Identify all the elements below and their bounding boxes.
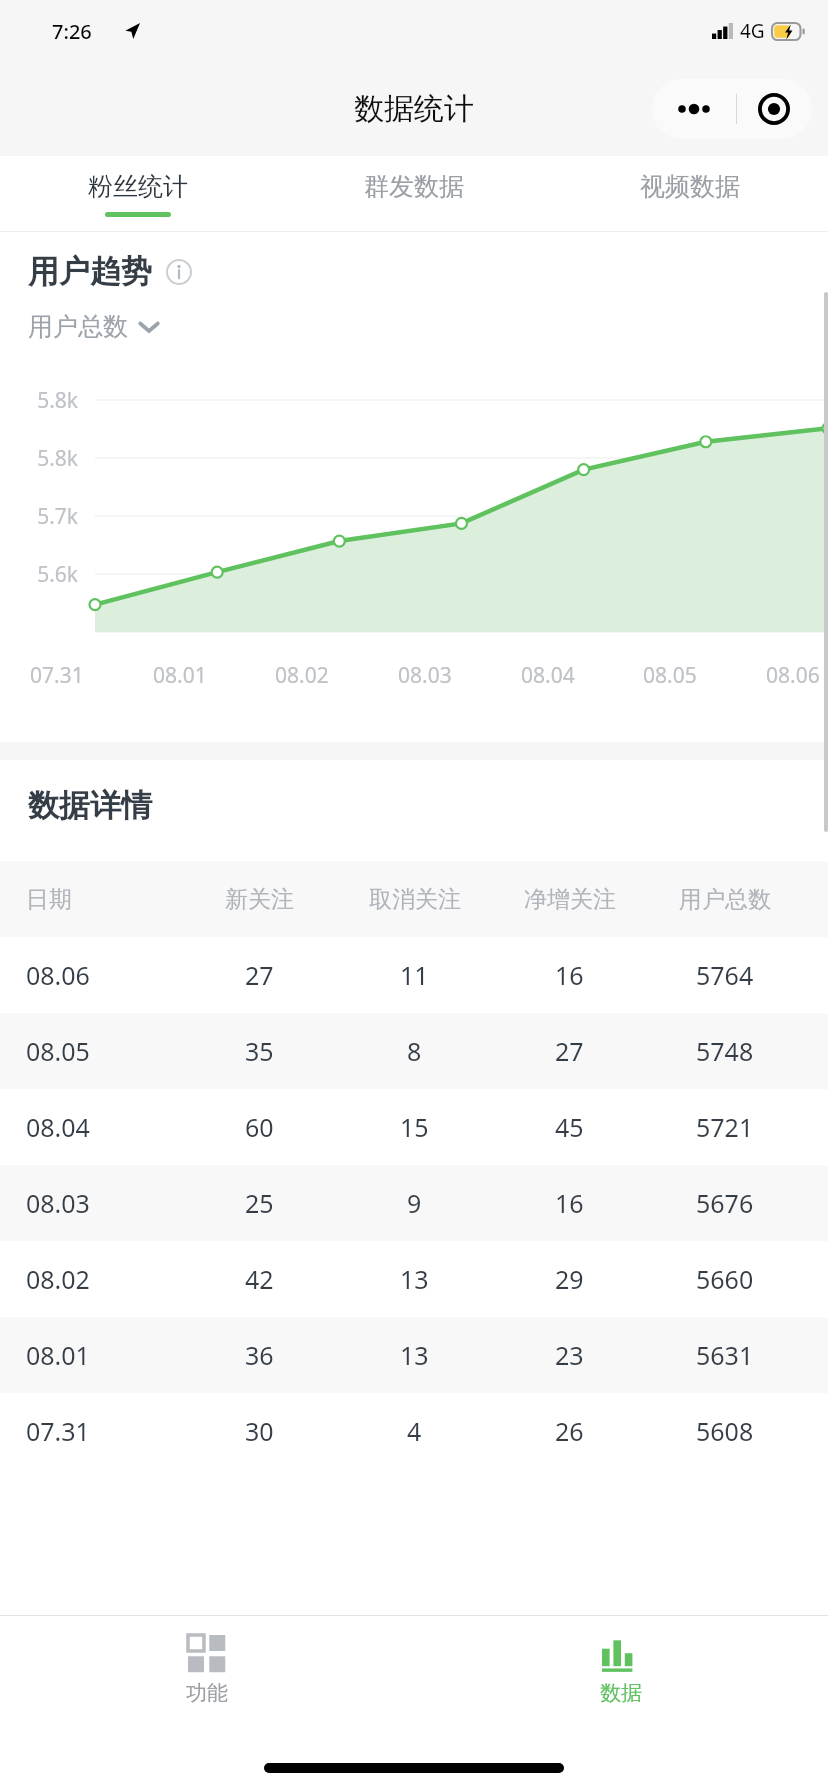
staticText: 5.8k: [37, 386, 78, 415]
button[interactable]: 视频数据: [552, 156, 828, 232]
staticText: 新关注: [225, 885, 294, 914]
button[interactable]: 用户趋势: [28, 252, 192, 291]
button[interactable]: 08.04: [0, 1089, 828, 1165]
button[interactable]: 粉丝统计: [0, 156, 276, 232]
button[interactable]: 功能: [0, 1616, 414, 1724]
staticText: 4G: [740, 18, 765, 44]
staticText: 9: [407, 1186, 422, 1220]
button[interactable]: 08.03: [0, 1165, 828, 1241]
staticText: 16: [555, 958, 584, 992]
staticText: 日期: [26, 885, 72, 914]
staticText: 29: [555, 1262, 584, 1296]
staticText: 08.06: [766, 661, 820, 690]
button[interactable]: 群发数据: [276, 156, 552, 232]
button[interactable]: 08.06: [0, 937, 828, 1013]
staticText: 27: [245, 958, 274, 992]
staticText: 5.7k: [37, 502, 78, 531]
staticText: 16: [555, 1186, 584, 1220]
staticText: 08.03: [26, 1186, 90, 1220]
staticText: 5631: [696, 1338, 754, 1372]
staticText: 08.04: [26, 1110, 90, 1144]
staticText: 群发数据: [364, 171, 464, 202]
staticText: 净增关注: [524, 885, 616, 914]
staticText: 5608: [696, 1414, 754, 1448]
staticText: 08.04: [521, 661, 575, 690]
staticText: 13: [400, 1262, 429, 1296]
staticText: 08.01: [153, 661, 207, 690]
staticText: 25: [245, 1186, 274, 1220]
staticText: 5.6k: [37, 560, 78, 589]
staticText: 功能: [186, 1680, 228, 1706]
staticText: 11: [400, 958, 429, 992]
button[interactable]: 用户总数: [28, 311, 160, 342]
staticText: 35: [245, 1034, 274, 1068]
staticText: 08.02: [275, 661, 329, 690]
button[interactable]: 数据: [414, 1616, 828, 1724]
staticText: 5721: [696, 1110, 754, 1144]
other: Info: [166, 259, 192, 285]
staticText: 30: [245, 1414, 274, 1448]
staticText: 5676: [696, 1186, 754, 1220]
staticText: 42: [245, 1262, 274, 1296]
staticText: 7:26: [52, 18, 92, 45]
staticText: 07.31: [30, 661, 84, 690]
button[interactable]: 08.01: [0, 1317, 828, 1393]
staticText: 数据统计: [354, 90, 474, 128]
staticText: 36: [245, 1338, 274, 1372]
staticText: 用户趋势: [28, 252, 152, 291]
staticText: 用户总数: [679, 885, 771, 914]
button[interactable]: 08.02: [0, 1241, 828, 1317]
staticText: 8: [407, 1034, 422, 1068]
staticText: 07.31: [26, 1414, 90, 1448]
staticText: 08.05: [26, 1034, 90, 1068]
staticText: 23: [555, 1338, 584, 1372]
staticText: 15: [400, 1110, 429, 1144]
staticText: 60: [245, 1110, 274, 1144]
button[interactable]: 08.05: [0, 1013, 828, 1089]
staticText: 08.06: [26, 958, 90, 992]
button[interactable]: 07.31: [0, 1393, 828, 1469]
staticText: 视频数据: [640, 171, 740, 202]
staticText: 用户总数: [28, 311, 128, 342]
staticText: 45: [555, 1110, 584, 1144]
staticText: 数据: [600, 1680, 642, 1706]
staticText: 5.8k: [37, 444, 78, 473]
staticText: 5660: [696, 1262, 754, 1296]
button[interactable]: More and close: [652, 79, 812, 139]
staticText: 26: [555, 1414, 584, 1448]
staticText: 27: [555, 1034, 584, 1068]
staticText: 粉丝统计: [88, 171, 188, 202]
staticText: 08.01: [26, 1338, 90, 1372]
staticText: 取消关注: [369, 885, 461, 914]
staticText: 08.03: [398, 661, 452, 690]
staticText: 数据详情: [28, 786, 152, 825]
staticText: 08.02: [26, 1262, 90, 1296]
staticText: 13: [400, 1338, 429, 1372]
staticText: 08.05: [643, 661, 697, 690]
staticText: 4: [407, 1414, 422, 1448]
staticText: 5748: [696, 1034, 754, 1068]
staticText: 5764: [696, 958, 754, 992]
